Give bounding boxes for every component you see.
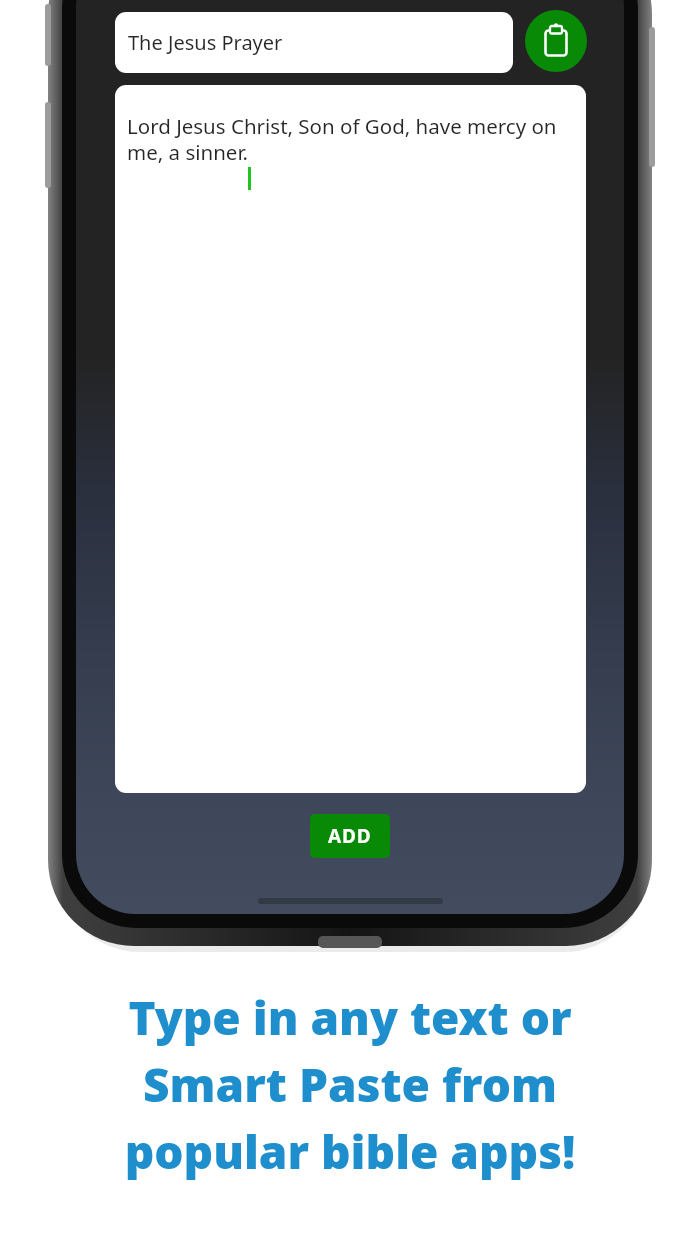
button[interactable]: The Jesus Prayer <box>115 12 513 73</box>
button[interactable]: Smart Paste from clipboard <box>525 10 587 72</box>
staticText: popular bible apps! <box>0 1120 700 1183</box>
button[interactable]: ADD <box>310 814 390 858</box>
staticText: ADD <box>328 823 372 849</box>
staticText: Type in any text or <box>0 986 700 1049</box>
staticText: Lord Jesus Christ, Son of God, have merc… <box>127 112 576 166</box>
staticText: Smart Paste from <box>0 1053 700 1116</box>
button[interactable]: Lord Jesus Christ, Son of God, have merc… <box>115 85 586 793</box>
staticText: The Jesus Prayer <box>128 29 283 56</box>
